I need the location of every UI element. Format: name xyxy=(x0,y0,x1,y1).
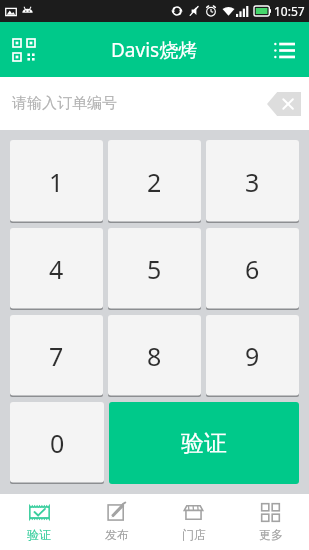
button[interactable]: 发布 xyxy=(78,494,155,550)
staticText: 1 xyxy=(49,165,64,199)
staticText: 请输入订单编号 xyxy=(12,94,117,113)
button[interactable]: 1 xyxy=(10,140,103,223)
button[interactable]: 门店 xyxy=(155,494,232,550)
staticText: 验证 xyxy=(181,429,227,458)
button[interactable]: 2 xyxy=(108,140,201,223)
button[interactable]: 5 xyxy=(108,228,201,310)
staticText: 9 xyxy=(245,339,260,373)
button[interactable]: 3 xyxy=(206,140,299,223)
button[interactable]: Backspace xyxy=(267,92,301,116)
staticText: 更多 xyxy=(259,527,283,542)
button[interactable]: 更多 xyxy=(232,494,309,550)
button[interactable]: 8 xyxy=(108,315,201,397)
staticText: 8 xyxy=(147,339,162,373)
button[interactable]: Menu xyxy=(264,30,304,70)
button[interactable]: 验证 xyxy=(0,494,78,550)
button[interactable]: 验证 xyxy=(109,402,299,484)
staticText: 4 xyxy=(49,252,64,286)
staticText: 验证 xyxy=(27,527,51,542)
staticText: 门店 xyxy=(182,527,206,542)
staticText: Davis烧烤 xyxy=(111,37,198,63)
staticText: 6 xyxy=(245,252,260,286)
staticText: 2 xyxy=(147,165,162,199)
button[interactable]: Scan QR code xyxy=(4,30,44,70)
button[interactable]: 6 xyxy=(206,228,299,310)
staticText: 5 xyxy=(147,252,162,286)
staticText: 10:57 xyxy=(274,3,305,19)
staticText: 0 xyxy=(50,426,65,460)
button[interactable]: 0 xyxy=(10,402,104,484)
button[interactable]: 7 xyxy=(10,315,103,397)
staticText: 3 xyxy=(245,165,260,199)
staticText: 7 xyxy=(49,339,64,373)
staticText: 发布 xyxy=(105,527,129,542)
button[interactable]: 4 xyxy=(10,228,103,310)
button[interactable]: 9 xyxy=(206,315,299,397)
